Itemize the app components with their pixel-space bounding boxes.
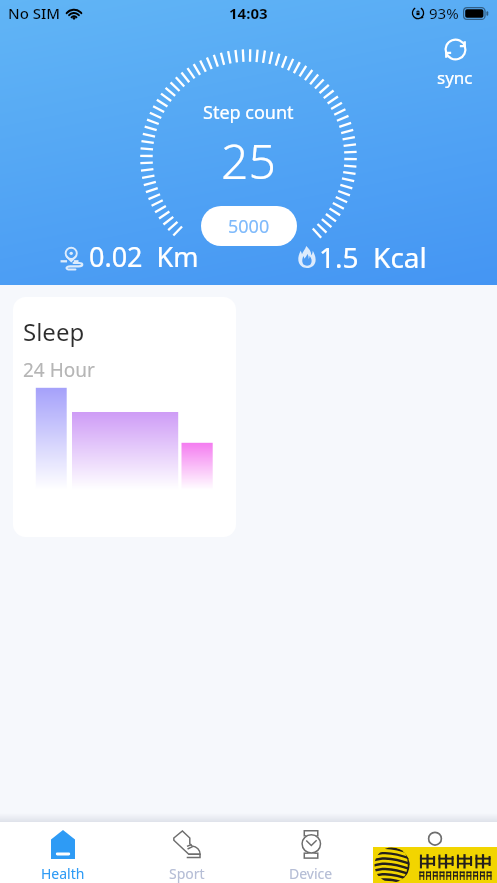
staticText: 5000 xyxy=(228,214,270,239)
staticText: 25 xyxy=(221,128,276,193)
staticText: 0.02 Km xyxy=(89,238,199,275)
staticText: Mine xyxy=(419,864,452,883)
staticText: 1.5 Kcal xyxy=(319,238,427,276)
button[interactable]: Sync xyxy=(433,34,477,93)
staticText: Sleep xyxy=(23,315,85,348)
button[interactable]: Health xyxy=(0,822,125,883)
button[interactable]: 5000 xyxy=(201,206,297,246)
staticText: 93% xyxy=(429,3,459,23)
button[interactable]: Sport xyxy=(125,822,249,883)
staticText: Health xyxy=(41,864,85,883)
staticText: 24 Hour xyxy=(23,357,95,383)
staticText: No SIM xyxy=(8,3,61,23)
staticText: sync xyxy=(437,66,473,89)
staticText: Device xyxy=(289,864,333,883)
button[interactable]: Sleep xyxy=(13,297,236,537)
button[interactable]: Device xyxy=(249,822,373,883)
staticText: Sport xyxy=(169,864,205,883)
staticText: 14:03 xyxy=(229,3,268,23)
button[interactable]: Mine xyxy=(373,822,497,883)
staticText: Step count xyxy=(203,100,294,125)
